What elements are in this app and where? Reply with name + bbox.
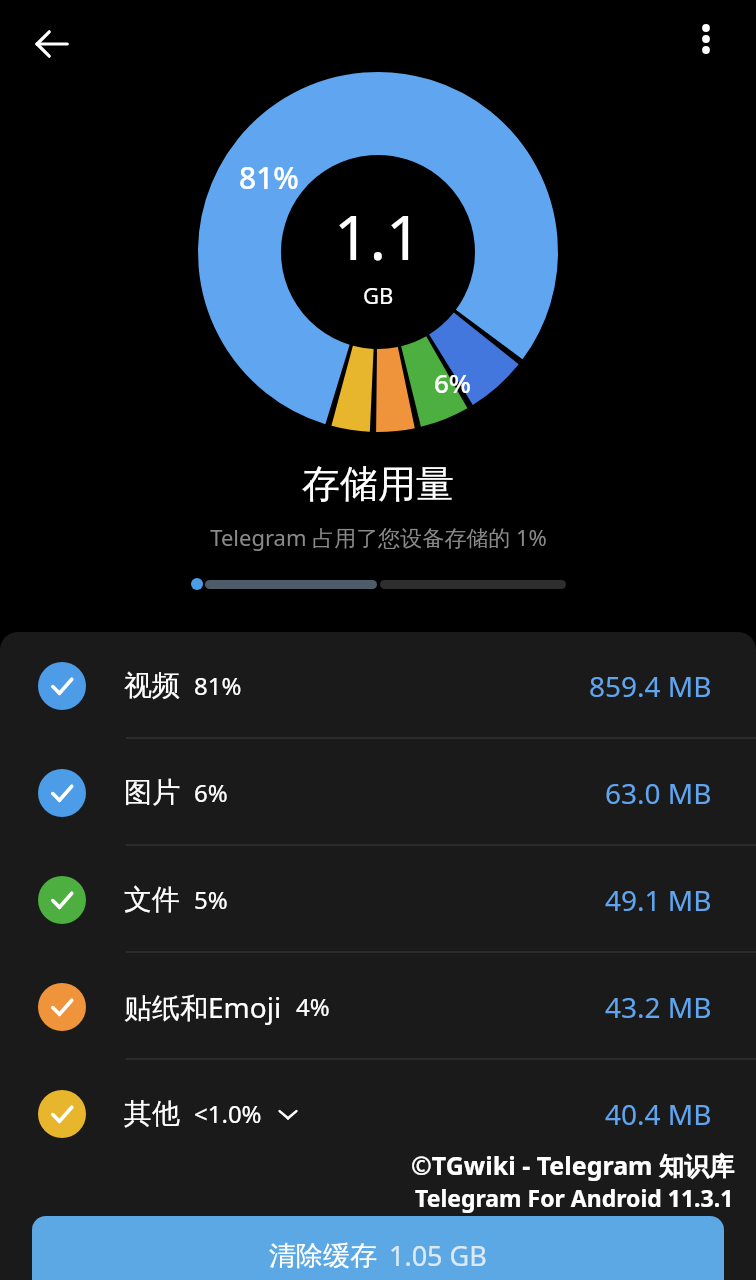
- staticText: 其他: [124, 1096, 180, 1131]
- button[interactable]: 视频: [0, 632, 756, 739]
- staticText: 81%: [239, 157, 299, 198]
- button[interactable]: 清除缓存: [32, 1216, 724, 1280]
- staticText: 6%: [434, 365, 472, 400]
- button[interactable]: 其他: [0, 1060, 756, 1167]
- staticText: 43.2 MB: [605, 988, 712, 1026]
- button[interactable]: 贴纸和Emoji: [0, 953, 756, 1060]
- staticText: 1.05 GB: [389, 1237, 487, 1274]
- staticText: 5%: [194, 883, 228, 916]
- staticText: <1.0%: [194, 1097, 262, 1130]
- staticText: 存储用量: [302, 460, 454, 508]
- staticText: 49.1 MB: [605, 881, 712, 919]
- staticText: 6%: [194, 776, 228, 809]
- staticText: 贴纸和Emoji: [124, 988, 282, 1026]
- staticText: Telegram For Android 11.3.1: [415, 1182, 734, 1213]
- staticText: 1.1: [334, 194, 422, 278]
- staticText: 859.4 MB: [589, 667, 712, 705]
- staticText: 文件: [124, 882, 180, 917]
- staticText: 视频: [124, 668, 180, 703]
- staticText: 清除缓存: [269, 1239, 377, 1273]
- button[interactable]: 文件: [0, 846, 756, 953]
- staticText: 81%: [194, 669, 242, 702]
- staticText: 40.4 MB: [605, 1095, 712, 1133]
- button[interactable]: Back: [18, 10, 86, 78]
- staticText: Telegram 占用了您设备存储的 1%: [210, 522, 547, 552]
- button[interactable]: More options: [673, 6, 739, 72]
- staticText: ©TGwiki - Telegram 知识库: [411, 1148, 734, 1182]
- staticText: GB: [363, 280, 394, 310]
- staticText: 图片: [124, 775, 180, 810]
- button[interactable]: 图片: [0, 739, 756, 846]
- staticText: 4%: [296, 990, 330, 1023]
- staticText: 63.0 MB: [605, 774, 712, 812]
